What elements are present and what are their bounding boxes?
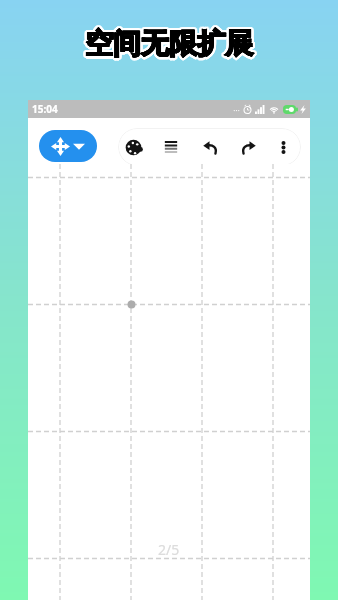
staticText: 15:04 [32, 102, 58, 116]
staticText: 2/5 [158, 540, 180, 559]
button[interactable]: More options [266, 130, 300, 164]
button[interactable]: Layers [154, 130, 188, 164]
button[interactable]: Move tool [39, 130, 97, 162]
button[interactable]: Redo [231, 130, 265, 164]
button[interactable]: Undo [193, 130, 227, 164]
button[interactable]: Palette [116, 130, 150, 164]
other: Move tool [51, 137, 70, 156]
